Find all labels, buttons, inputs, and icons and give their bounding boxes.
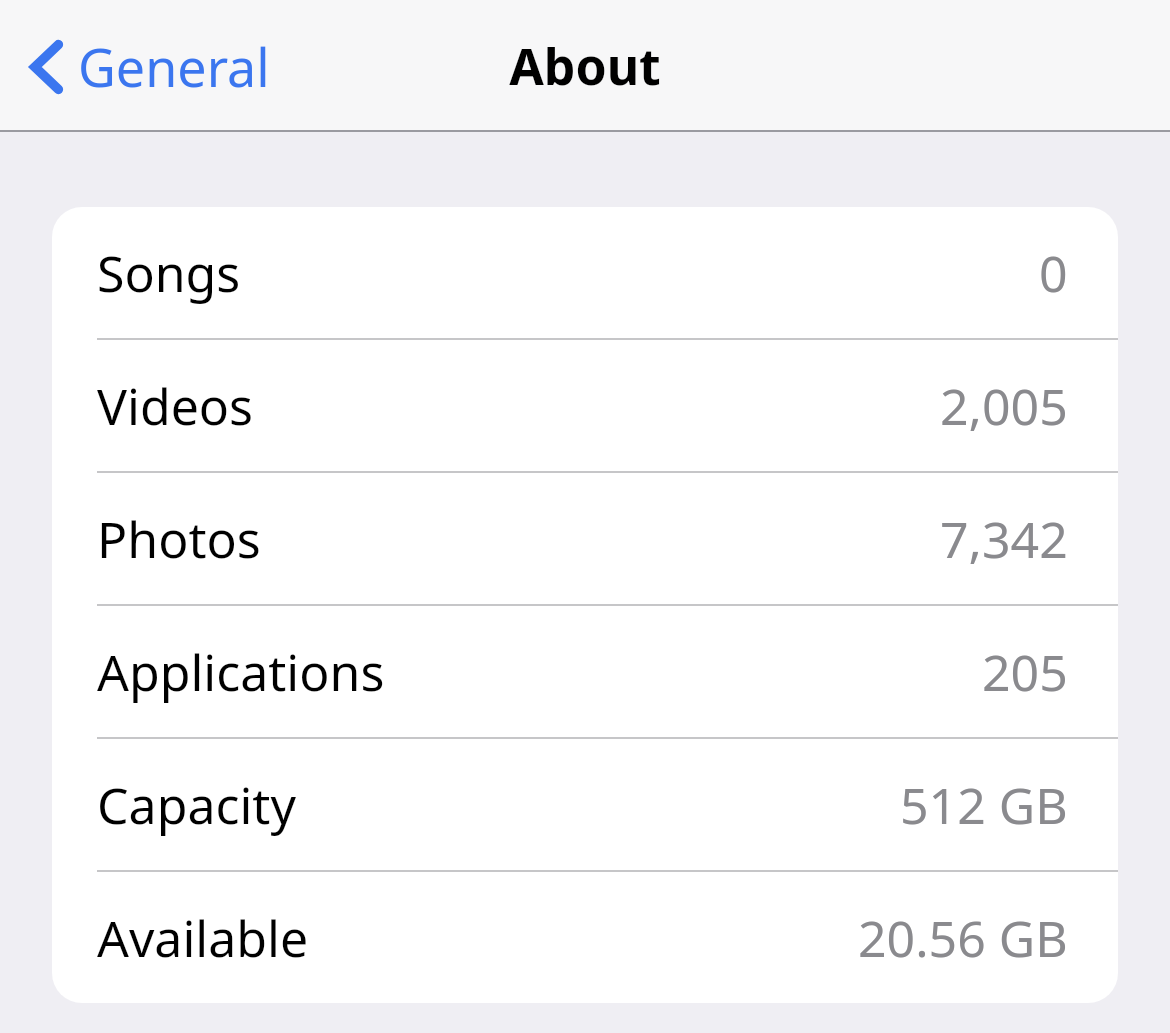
staticText: Available: [97, 904, 309, 972]
staticText: About: [509, 32, 661, 100]
staticText: 20.56 GB: [858, 904, 1068, 972]
button[interactable]: Photos: [52, 473, 1118, 604]
button[interactable]: Back: [20, 25, 278, 108]
staticText: Capacity: [97, 771, 296, 839]
staticText: 0: [1039, 239, 1068, 307]
staticText: Photos: [97, 505, 261, 573]
staticText: Applications: [97, 638, 385, 706]
staticText: 2,005: [940, 372, 1068, 440]
staticText: Videos: [97, 372, 254, 440]
button[interactable]: Videos: [52, 340, 1118, 471]
button[interactable]: Capacity: [52, 739, 1118, 870]
staticText: Songs: [97, 239, 241, 307]
staticText: 7,342: [940, 505, 1068, 573]
button[interactable]: Songs: [52, 207, 1118, 338]
other: Back: [28, 39, 66, 95]
button[interactable]: Available: [52, 872, 1118, 1003]
staticText: 512 GB: [900, 771, 1068, 839]
button[interactable]: Applications: [52, 606, 1118, 737]
staticText: 205: [982, 638, 1068, 706]
staticText: General: [78, 31, 270, 102]
